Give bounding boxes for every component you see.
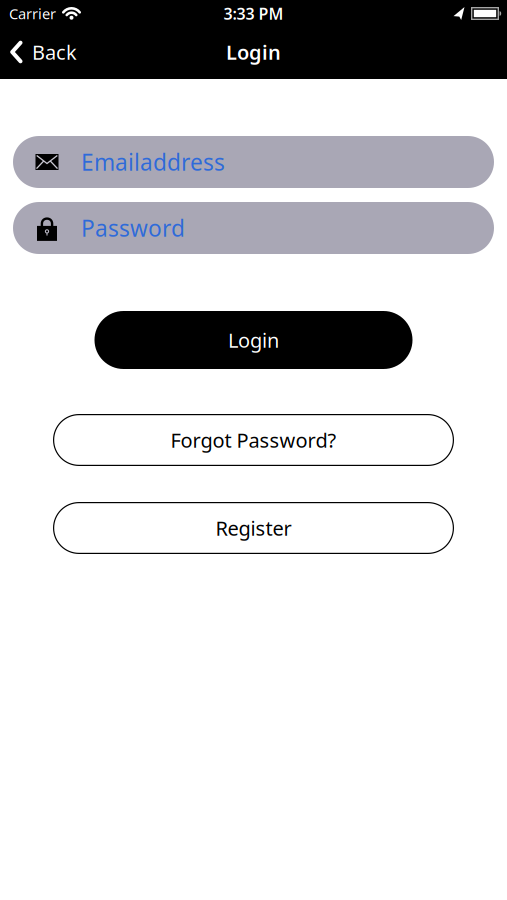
staticText: Emailaddress [81,147,225,177]
staticText: Register [215,515,291,541]
staticText: Login [226,39,281,65]
staticText: Password [81,213,185,243]
button[interactable]: Password [13,202,494,254]
button[interactable]: Register [53,502,454,554]
staticText: Forgot Password? [170,427,336,453]
staticText: Login [228,327,279,353]
button[interactable]: Login [94,311,412,369]
button[interactable]: Forgot Password? [53,414,454,466]
staticText: Carrier [9,4,56,23]
staticText: 3:33 PM [223,3,283,24]
button[interactable]: Emailaddress [13,136,494,188]
staticText: Back [32,39,77,65]
button[interactable]: Back [0,25,77,79]
